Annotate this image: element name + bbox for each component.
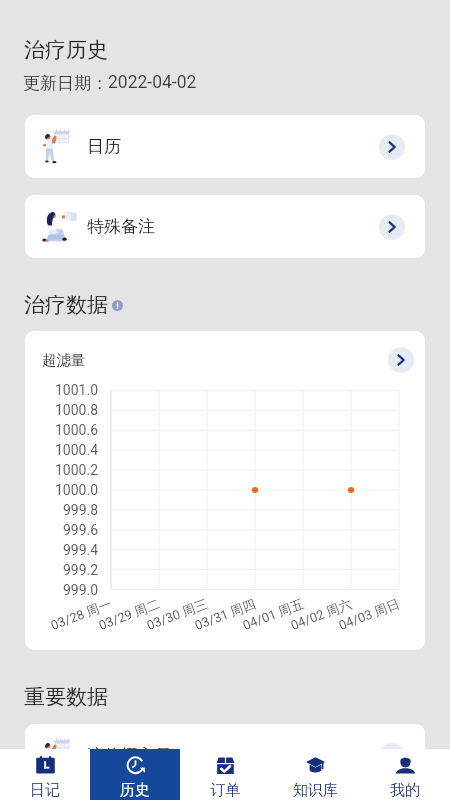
button[interactable]: 订单 <box>180 749 270 800</box>
button[interactable]: 信息 <box>112 300 123 311</box>
button[interactable]: 查看详情 <box>379 214 405 240</box>
staticText: 液体摄入量 <box>87 745 172 766</box>
button[interactable]: 液体摄入量 <box>25 724 425 787</box>
staticText: 历史 <box>120 781 150 800</box>
button[interactable]: 查看详情 <box>388 347 414 373</box>
button[interactable]: 特殊备注 <box>25 195 425 258</box>
button[interactable]: 日历 <box>25 115 425 178</box>
staticText: 2022-04-02 <box>108 72 197 93</box>
staticText: 日记 <box>30 781 60 800</box>
button[interactable]: 查看详情 <box>379 134 405 160</box>
staticText: 治疗数据 <box>24 292 108 318</box>
button[interactable]: 历史 <box>90 749 180 800</box>
staticText: 我的 <box>390 781 420 800</box>
staticText: 治疗历史 <box>24 37 108 63</box>
staticText: 更新日期： <box>23 73 108 94</box>
button[interactable]: 我的 <box>360 749 450 800</box>
button[interactable]: 日记 <box>0 749 90 800</box>
button[interactable]: 查看详情 <box>379 743 405 769</box>
staticText: 订单 <box>210 781 240 800</box>
staticText: 特殊备注 <box>87 216 155 237</box>
staticText: 知识库 <box>293 781 338 800</box>
staticText: 超滤量 <box>42 351 86 369</box>
button[interactable]: 知识库 <box>270 749 360 800</box>
staticText: 重要数据 <box>24 684 108 710</box>
staticText: 日历 <box>87 136 121 157</box>
